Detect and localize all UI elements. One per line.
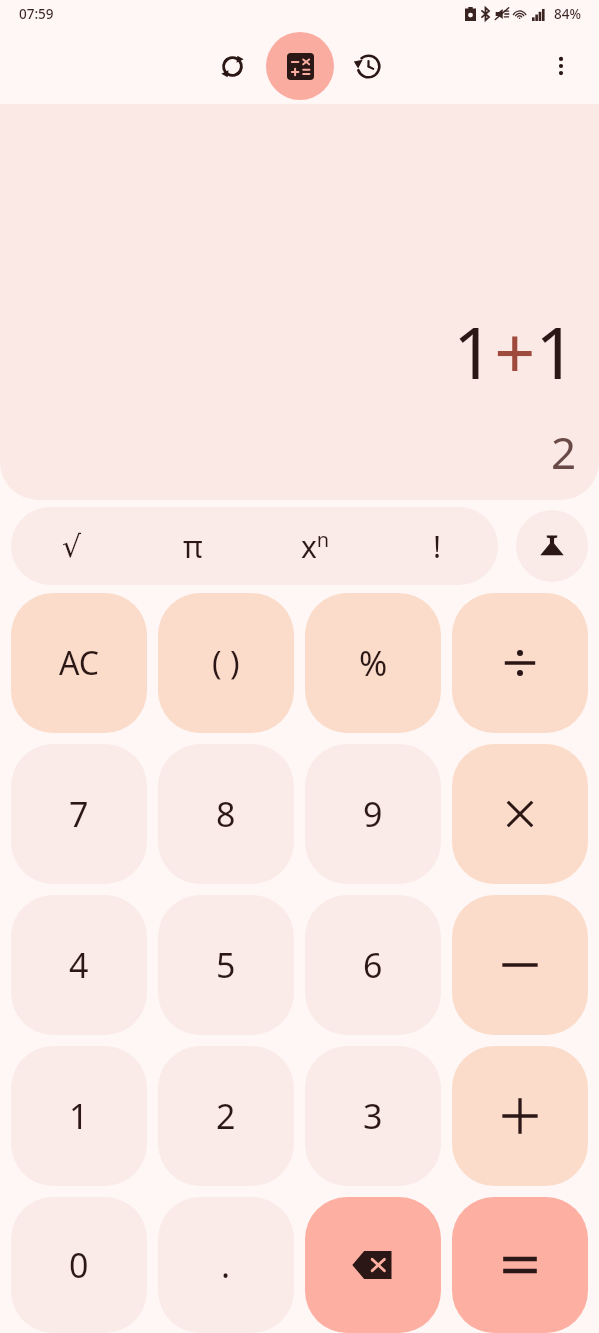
button[interactable]: %: [305, 593, 441, 733]
staticText: 3: [363, 1093, 383, 1139]
button[interactable]: History: [334, 32, 402, 100]
staticText: 0: [69, 1242, 89, 1288]
button[interactable]: 2: [158, 1046, 294, 1186]
button[interactable]: 1: [11, 1046, 147, 1186]
button[interactable]: Power: [254, 507, 376, 585]
button[interactable]: 7: [11, 744, 147, 884]
button[interactable]: 0: [11, 1197, 147, 1333]
staticText: ( ): [212, 641, 240, 685]
staticText: 4: [69, 942, 89, 988]
staticText: !: [433, 526, 442, 567]
staticText: .: [221, 1242, 231, 1288]
staticText: 1+1: [453, 302, 577, 400]
staticText: 7: [69, 791, 89, 837]
staticText: AC: [59, 641, 100, 685]
staticText: 6: [363, 942, 383, 988]
staticText: 9: [363, 791, 383, 837]
button[interactable]: 8: [158, 744, 294, 884]
button[interactable]: 4: [11, 895, 147, 1035]
button[interactable]: Multiply: [452, 744, 588, 884]
button[interactable]: Pi: [132, 507, 254, 585]
button[interactable]: Divide: [452, 593, 588, 733]
button[interactable]: Scientific functions: [516, 510, 588, 582]
staticText: 2: [216, 1093, 236, 1139]
button[interactable]: 9: [305, 744, 441, 884]
staticText: 2: [551, 422, 577, 482]
button[interactable]: Subtract: [452, 895, 588, 1035]
button[interactable]: 3: [305, 1046, 441, 1186]
button[interactable]: .: [158, 1197, 294, 1333]
button[interactable]: Square root: [11, 507, 132, 585]
staticText: 1: [69, 1093, 89, 1139]
staticText: 84%: [554, 5, 581, 23]
staticText: π: [183, 526, 203, 567]
button[interactable]: Backspace: [305, 1197, 441, 1333]
staticText: xn: [301, 526, 330, 567]
staticText: 5: [216, 942, 236, 988]
button[interactable]: Convert units: [198, 32, 266, 100]
staticText: 07:59: [19, 5, 54, 23]
button[interactable]: Equals: [452, 1197, 588, 1333]
staticText: √: [62, 529, 82, 564]
button[interactable]: More options: [533, 38, 589, 94]
button[interactable]: 6: [305, 895, 441, 1035]
button[interactable]: Add: [452, 1046, 588, 1186]
staticText: %: [359, 640, 388, 686]
button[interactable]: ( ): [158, 593, 294, 733]
button[interactable]: 5: [158, 895, 294, 1035]
button[interactable]: AC: [11, 593, 147, 733]
button[interactable]: Calculator: [266, 32, 334, 100]
staticText: 8: [216, 791, 236, 837]
button[interactable]: Factorial: [376, 507, 498, 585]
